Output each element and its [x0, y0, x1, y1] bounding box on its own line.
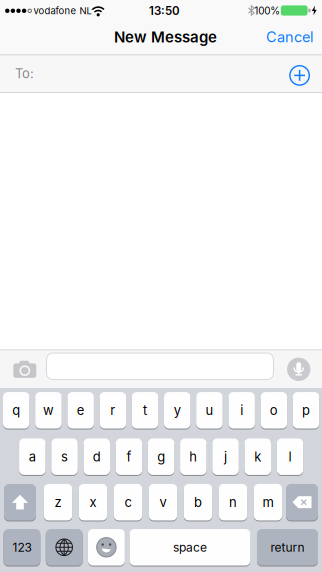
- button[interactable]: e: [67, 392, 94, 429]
- staticText: t: [143, 402, 147, 418]
- button[interactable]: [46, 529, 83, 565]
- staticText: return: [270, 540, 304, 554]
- staticText: m: [262, 494, 273, 510]
- staticText: p: [302, 402, 310, 418]
- button[interactable]: w: [35, 392, 62, 429]
- button[interactable]: q: [3, 392, 29, 429]
- staticText: u: [205, 402, 213, 418]
- button[interactable]: j: [212, 438, 239, 475]
- staticText: g: [157, 449, 165, 464]
- staticText: e: [77, 402, 85, 418]
- button[interactable]: [88, 529, 125, 565]
- button[interactable]: [285, 60, 315, 90]
- staticText: i: [240, 402, 243, 418]
- staticText: k: [254, 449, 261, 464]
- button[interactable]: space: [129, 529, 250, 565]
- button[interactable]: n: [219, 484, 247, 520]
- staticText: j: [224, 449, 227, 464]
- staticText: y: [174, 402, 181, 418]
- button[interactable]: h: [180, 438, 207, 475]
- button[interactable]: [0, 55, 322, 92]
- button[interactable]: i: [228, 392, 255, 429]
- staticText: f: [126, 449, 131, 464]
- staticText: s: [61, 449, 68, 464]
- button[interactable]: v: [149, 484, 177, 520]
- button[interactable]: t: [132, 392, 158, 429]
- button[interactable]: s: [51, 438, 78, 475]
- button[interactable]: [286, 484, 318, 520]
- staticText: 13:50: [149, 4, 180, 18]
- button[interactable]: Cancel: [255, 21, 322, 53]
- staticText: 123: [12, 540, 31, 554]
- button[interactable]: f: [116, 438, 142, 475]
- staticText: c: [124, 494, 131, 510]
- button[interactable]: x: [79, 484, 107, 520]
- button[interactable]: y: [164, 392, 190, 429]
- button[interactable]: [46, 353, 273, 380]
- button[interactable]: l: [277, 438, 303, 475]
- button[interactable]: d: [83, 438, 110, 475]
- staticText: d: [93, 449, 101, 464]
- staticText: h: [189, 449, 197, 464]
- button[interactable]: u: [196, 392, 223, 429]
- staticText: vodafone NL: [33, 5, 91, 17]
- button[interactable]: a: [19, 438, 46, 475]
- staticText: z: [54, 494, 61, 510]
- staticText: w: [43, 402, 54, 418]
- staticText: New Message: [114, 28, 217, 46]
- button[interactable]: g: [148, 438, 174, 475]
- staticText: x: [89, 494, 96, 510]
- button[interactable]: m: [254, 484, 282, 520]
- staticText: o: [270, 402, 278, 418]
- staticText: 100%: [254, 5, 280, 17]
- button[interactable]: [4, 484, 36, 520]
- staticText: a: [29, 449, 36, 464]
- staticText: To:: [15, 66, 34, 81]
- staticText: v: [159, 494, 166, 510]
- button[interactable]: b: [184, 484, 212, 520]
- button[interactable]: r: [100, 392, 126, 429]
- button[interactable]: c: [114, 484, 142, 520]
- staticText: Cancel: [266, 28, 314, 46]
- button[interactable]: 123: [3, 529, 40, 565]
- staticText: n: [229, 494, 237, 510]
- staticText: q: [12, 402, 20, 418]
- button[interactable]: z: [44, 484, 72, 520]
- staticText: space: [173, 540, 207, 554]
- staticText: r: [110, 402, 115, 418]
- button[interactable]: return: [257, 529, 318, 565]
- button[interactable]: k: [244, 438, 271, 475]
- button[interactable]: [13, 361, 36, 378]
- button[interactable]: o: [261, 392, 287, 429]
- button[interactable]: p: [293, 392, 319, 429]
- staticText: l: [288, 449, 291, 464]
- button[interactable]: [287, 358, 310, 381]
- staticText: b: [194, 494, 202, 510]
